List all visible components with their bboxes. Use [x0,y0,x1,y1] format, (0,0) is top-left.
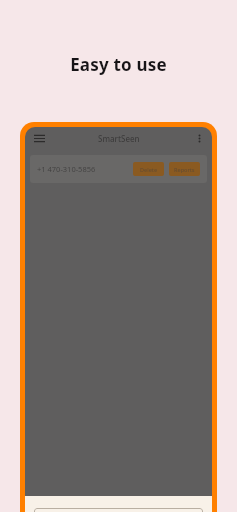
button[interactable]: More options [191,130,207,146]
staticText: +1 470-310-5856 [37,164,96,174]
button[interactable]: +1 470-310-5856 [30,155,207,183]
button[interactable]: Reports [169,162,200,176]
staticText: Delete [140,166,158,173]
staticText: SmartSeen [98,133,140,144]
button[interactable]: Delete [133,162,164,176]
button[interactable]: US [34,508,203,512]
button[interactable]: Open navigation menu [30,129,48,147]
staticText: Reports [174,166,195,173]
staticText: Easy to use [0,53,237,76]
